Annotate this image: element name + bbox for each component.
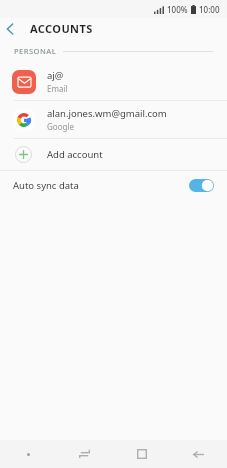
button[interactable]: Recent apps [56, 440, 113, 468]
button[interactable]: Back [0, 19, 20, 39]
button[interactable]: alan.jones.wm@gmail.com [0, 101, 227, 138]
staticText: PERSONAL [14, 46, 57, 56]
staticText: Email [47, 83, 68, 94]
staticText: Add account [47, 148, 103, 161]
button[interactable]: Back [170, 440, 227, 468]
staticText: Auto sync data [13, 179, 79, 192]
staticText: Google [47, 121, 74, 132]
button[interactable]: Add account [0, 139, 227, 170]
staticText: ACCOUNTS [30, 21, 93, 36]
staticText: 100% [167, 4, 188, 15]
button[interactable]: Home [113, 440, 170, 468]
staticText: 10:00 [199, 4, 220, 15]
staticText: alan.jones.wm@gmail.com [47, 107, 167, 120]
button[interactable]: Auto sync data [0, 171, 227, 199]
staticText: aj@ [47, 69, 64, 82]
button[interactable]: Menu indicator [0, 440, 56, 468]
button[interactable]: aj@ [0, 63, 227, 100]
